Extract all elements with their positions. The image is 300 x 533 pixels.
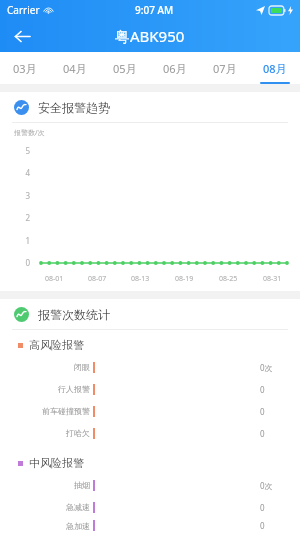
staticText: 4 <box>20 167 30 178</box>
staticText: 1 <box>20 235 30 246</box>
button[interactable]: Back <box>6 20 38 52</box>
button[interactable]: 07月 <box>200 52 250 84</box>
staticText: 08-25 <box>219 274 238 284</box>
staticText: 05月 <box>113 61 137 76</box>
staticText: 2 <box>20 212 30 223</box>
staticText: 08月 <box>263 61 287 76</box>
button[interactable]: 05月 <box>100 52 150 84</box>
staticText: 08-07 <box>88 274 107 284</box>
staticText: 抽烟 <box>0 480 90 490</box>
staticText: 08-01 <box>45 274 64 284</box>
button[interactable]: 急减速 <box>0 496 300 518</box>
button[interactable]: 08月 <box>250 52 300 84</box>
staticText: 急减速 <box>0 502 90 512</box>
staticText: Carrier <box>7 3 40 17</box>
staticText: 报警次数统计 <box>38 307 110 322</box>
staticText: 04月 <box>63 61 87 76</box>
staticText: 前车碰撞预警 <box>0 406 90 416</box>
staticText: 3 <box>20 190 30 201</box>
staticText: 中风险报警 <box>29 456 84 470</box>
staticText: 0 <box>260 520 300 531</box>
staticText: 行人报警 <box>0 384 90 394</box>
button[interactable]: 04月 <box>50 52 100 84</box>
staticText: 0 <box>260 384 300 395</box>
staticText: 0 <box>260 428 300 439</box>
staticText: 0次 <box>260 362 300 373</box>
button[interactable]: 03月 <box>0 52 50 84</box>
staticText: 07月 <box>213 61 237 76</box>
button[interactable]: 抽烟 <box>0 474 300 496</box>
staticText: 急加速 <box>0 521 90 531</box>
button[interactable]: 前车碰撞预警 <box>0 400 300 422</box>
button[interactable]: 06月 <box>150 52 200 84</box>
button[interactable]: 行人报警 <box>0 378 300 400</box>
staticText: 03月 <box>13 61 37 76</box>
button[interactable]: 急加速 <box>0 518 300 533</box>
staticText: 08-31 <box>263 274 282 284</box>
button[interactable]: 闭眼 <box>0 356 300 378</box>
staticText: 打哈欠 <box>0 428 90 438</box>
staticText: 报警数/次 <box>14 128 45 138</box>
staticText: 闭眼 <box>0 362 90 372</box>
staticText: 0 <box>260 406 300 417</box>
staticText: 高风险报警 <box>29 338 84 352</box>
button[interactable]: 打哈欠 <box>0 422 300 444</box>
staticText: 08-19 <box>175 274 194 284</box>
staticText: 安全报警趋势 <box>38 100 110 115</box>
staticText: 08-13 <box>131 274 150 284</box>
staticText: 06月 <box>163 61 187 76</box>
staticText: 5 <box>20 145 30 156</box>
staticText: 0 <box>20 257 30 268</box>
staticText: 0次 <box>260 480 300 491</box>
staticText: 0 <box>260 502 300 513</box>
staticText: 9:07 AM <box>135 3 174 17</box>
staticText: 粤ABK950 <box>115 26 185 46</box>
